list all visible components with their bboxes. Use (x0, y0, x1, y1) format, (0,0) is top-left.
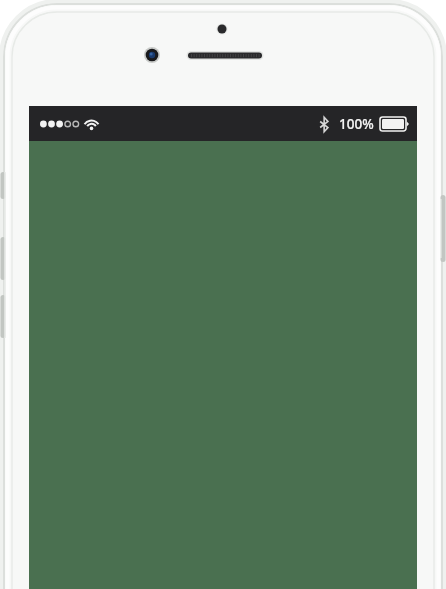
button[interactable]: Signal strength and Wi-Fi (29, 106, 417, 589)
other: Signal strength and Wi-Fi (40, 117, 100, 130)
other: Bluetooth, battery 100 percent (320, 115, 409, 133)
staticText: 100% (339, 115, 374, 133)
